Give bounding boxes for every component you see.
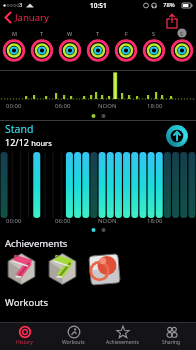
staticText: 06:00 (55, 102, 71, 110)
staticText: Achievements (5, 237, 68, 250)
staticText: 00:00 (6, 217, 22, 225)
staticText: T (96, 30, 100, 37)
staticText: History (16, 339, 33, 346)
button[interactable]: Workouts (49, 323, 98, 350)
button[interactable] (165, 124, 189, 148)
staticText: Stand (5, 122, 34, 136)
staticText: M (12, 30, 17, 37)
staticText: Workouts (5, 296, 48, 309)
staticText: 18:00 (147, 102, 163, 110)
staticText: NOON (98, 102, 117, 110)
staticText: S (152, 30, 156, 37)
staticText: 06:00 (55, 217, 71, 225)
staticText: NOON (98, 217, 117, 225)
staticText: 78% (163, 1, 175, 9)
staticText: S (180, 30, 184, 37)
staticText: F (125, 30, 128, 37)
staticText: 12/12 hours (5, 136, 52, 148)
staticText: 3 (19, 1, 23, 9)
button[interactable]: History (0, 323, 49, 350)
button[interactable] (46, 252, 79, 285)
button[interactable]: January (4, 11, 49, 24)
staticText: T (40, 30, 44, 37)
staticText: 00:00 (6, 102, 22, 110)
staticText: Sharing (162, 339, 181, 346)
staticText: W (67, 30, 73, 37)
staticText: Workouts (62, 339, 85, 346)
staticText: 10:51 (90, 1, 107, 10)
staticText: January (15, 11, 49, 24)
button[interactable] (164, 13, 180, 29)
button[interactable] (5, 252, 38, 285)
staticText: 18:00 (147, 217, 163, 225)
button[interactable]: Sharing (147, 323, 196, 350)
staticText: Achievements (106, 339, 139, 346)
button[interactable] (87, 252, 122, 287)
button[interactable]: Achievements (98, 323, 147, 350)
